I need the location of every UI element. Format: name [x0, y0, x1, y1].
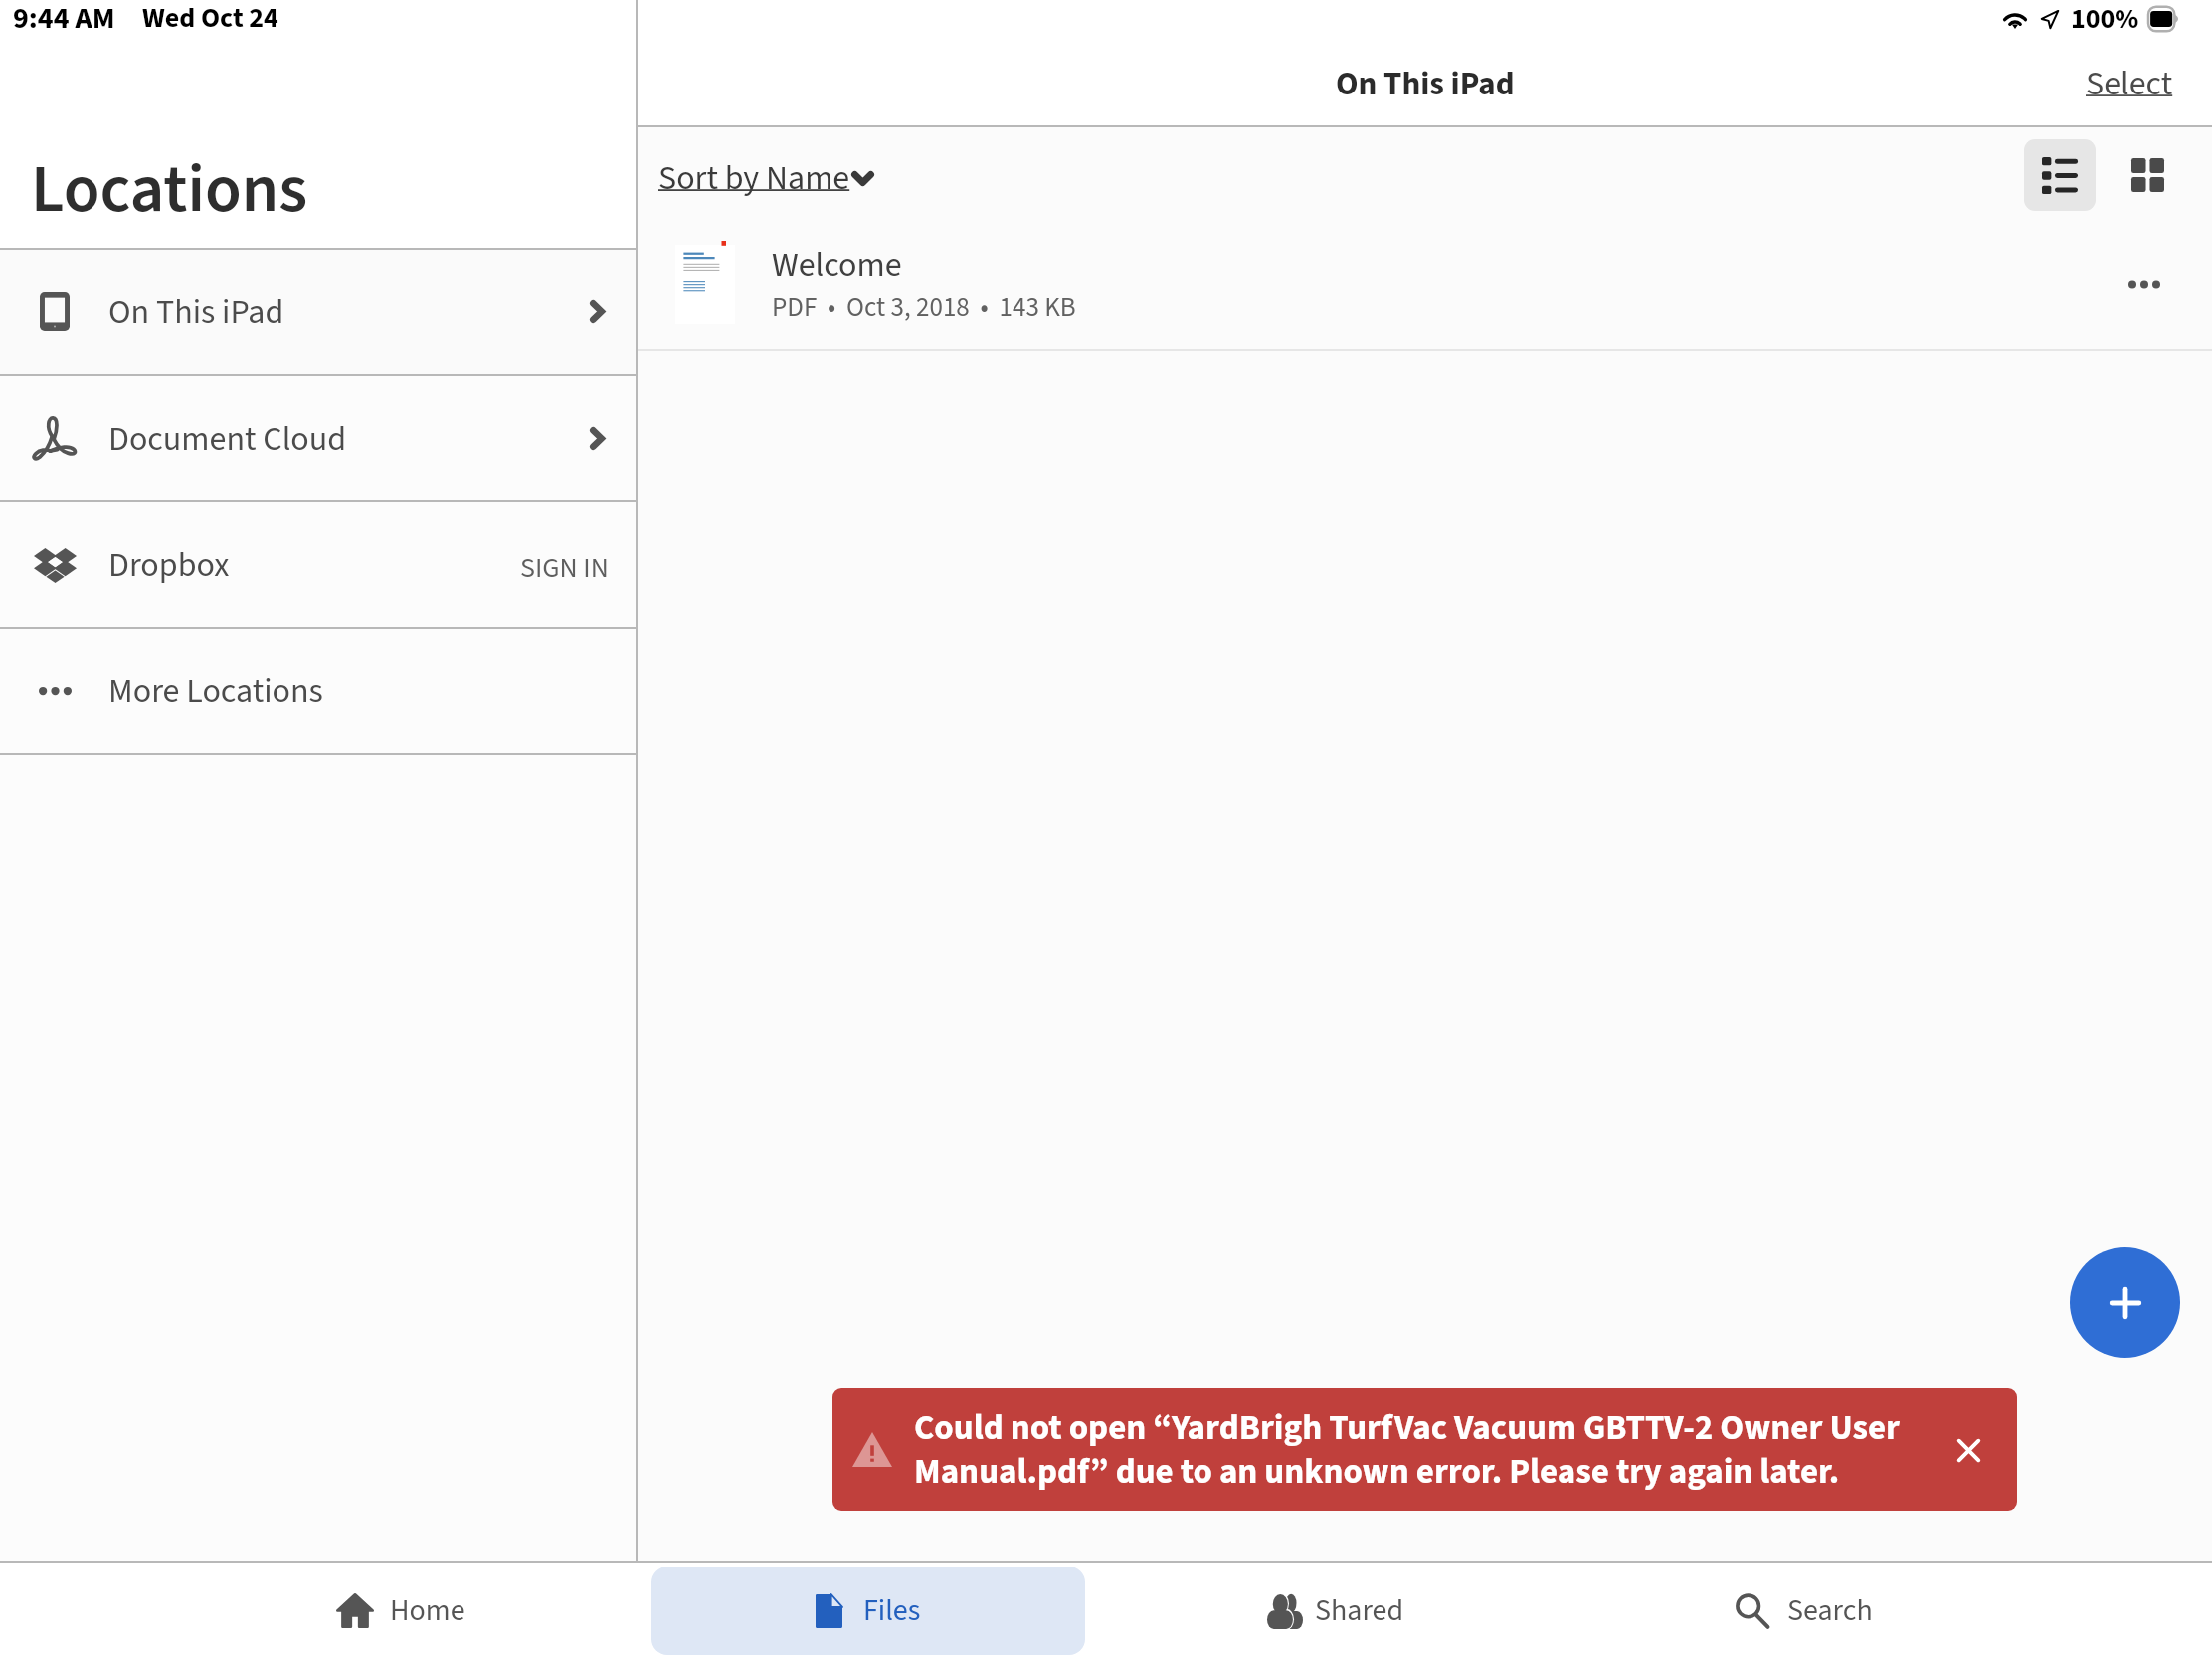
button[interactable]: Welcome	[638, 220, 2212, 349]
button[interactable]: More Locations	[0, 629, 636, 753]
button[interactable]: On This iPad	[0, 250, 636, 374]
staticText: Select	[2086, 60, 2173, 107]
staticText: SIGN IN	[520, 548, 609, 588]
staticText: Wed Oct 24	[142, 0, 278, 38]
button[interactable]: Create	[2070, 1247, 2180, 1358]
button[interactable]: Dismiss	[1942, 1424, 1994, 1476]
button[interactable]: Sort by Name	[648, 144, 884, 212]
staticText: Search	[1787, 1589, 1873, 1632]
button[interactable]: Dropbox	[0, 502, 636, 627]
staticText: Dropbox	[108, 541, 230, 589]
button[interactable]: Could not open “YardBrigh TurfVac Vacuum…	[832, 1388, 2017, 1511]
staticText: Sort by Name	[658, 154, 850, 202]
staticText: On This iPad	[108, 288, 284, 336]
button[interactable]: More options	[2110, 250, 2179, 319]
staticText: Document Cloud	[108, 415, 347, 462]
staticText: 100%	[2071, 0, 2139, 39]
staticText: On This iPad	[1336, 61, 1515, 107]
staticText: Could not open “YardBrigh TurfVac Vacuum…	[914, 1403, 1909, 1497]
staticText: Home	[390, 1589, 465, 1632]
button[interactable]: Files	[651, 1567, 1085, 1655]
staticText: Welcome	[772, 241, 902, 288]
staticText: PDF • Oct 3, 2018 • 143 KB	[772, 288, 1076, 326]
button[interactable]: Shared	[1119, 1567, 1553, 1655]
button[interactable]: List view	[2024, 139, 2096, 211]
staticText: Files	[863, 1589, 921, 1632]
button[interactable]: Grid view	[2112, 139, 2183, 211]
button[interactable]: Search	[1586, 1567, 2020, 1655]
staticText: More Locations	[108, 667, 323, 715]
button[interactable]: Home	[184, 1567, 618, 1655]
button[interactable]: Select	[2047, 48, 2212, 119]
staticText: Locations	[31, 142, 308, 237]
staticText: Shared	[1315, 1589, 1404, 1632]
button[interactable]: Document Cloud	[0, 376, 636, 500]
staticText: 9:44 AM	[13, 0, 115, 40]
